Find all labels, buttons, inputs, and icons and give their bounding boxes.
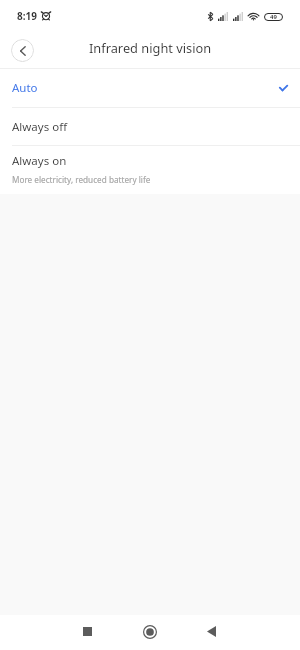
staticText: 8:19 [17,9,37,23]
staticText: Infrared night vision [89,39,212,56]
staticText: Always on [12,153,67,169]
button[interactable]: Always off [0,108,300,145]
staticText: Always off [12,119,68,135]
button[interactable]: Recent apps [67,614,107,649]
button[interactable]: Back [191,614,231,649]
staticText: More electricity, reduced battery life [12,174,151,185]
button[interactable]: Back [11,39,34,62]
other: Selected [279,85,288,91]
button[interactable]: Auto [0,69,300,107]
button[interactable]: Home [130,614,170,649]
staticText: Auto [12,80,38,96]
staticText: 49 [270,13,277,21]
button[interactable]: Always on [0,146,300,194]
